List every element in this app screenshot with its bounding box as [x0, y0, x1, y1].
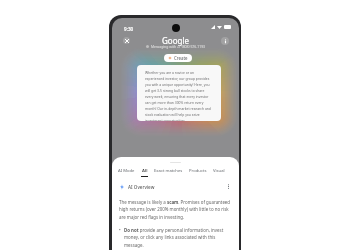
staticText: All [142, 168, 148, 174]
staticText: AI Overview [128, 184, 155, 190]
staticText: • [119, 227, 121, 233]
staticText: AI Mode [118, 168, 135, 174]
staticText: Products [189, 168, 207, 174]
staticText: The message is likely a scam. Promises o… [119, 199, 233, 221]
button[interactable]: Visual [210, 168, 228, 176]
staticText: Whether you are a novice or an experienc… [145, 70, 213, 121]
staticText: 9:30 [124, 26, 134, 32]
staticText: Google [162, 35, 189, 46]
button[interactable]: Create [164, 54, 192, 62]
staticText: Exact matches [154, 168, 183, 174]
staticText: Visual [213, 168, 225, 174]
button[interactable]: Info [221, 37, 229, 45]
button[interactable]: Close [123, 37, 130, 44]
staticText: Create [174, 55, 188, 61]
button[interactable]: Products [186, 168, 210, 176]
staticText: Messaging with +1 (808) 576-1193 [151, 44, 206, 49]
button[interactable]: More options [225, 183, 232, 190]
staticText: Do not provide any personal information,… [124, 227, 233, 249]
button[interactable]: AI Mode [115, 168, 138, 176]
button[interactable]: All [138, 168, 151, 177]
button[interactable]: Exact matches [151, 168, 186, 176]
